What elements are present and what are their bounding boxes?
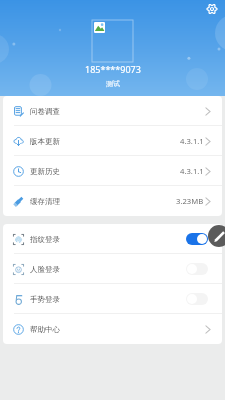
- staticText: 185****9073: [85, 63, 141, 75]
- staticText: 手势登录: [30, 295, 60, 304]
- staticText: 4.3.1.1: [180, 166, 204, 176]
- button[interactable]: 更新历史: [3, 156, 222, 186]
- button[interactable]: 版本更新: [3, 126, 222, 156]
- button[interactable]: Edit: [208, 225, 225, 247]
- button[interactable]: 帮助中心: [3, 314, 222, 344]
- staticText: 3.23MB: [176, 196, 204, 206]
- staticText: 版本更新: [30, 137, 60, 146]
- button[interactable]: 指纹登录: [3, 224, 222, 254]
- staticText: 测试: [106, 79, 120, 88]
- button[interactable]: 问卷调查: [3, 96, 222, 126]
- staticText: 指纹登录: [30, 235, 60, 244]
- button[interactable]: Settings: [203, 0, 220, 17]
- staticText: 4.3.1.1: [180, 136, 204, 146]
- staticText: 更新历史: [30, 167, 60, 176]
- staticText: 人脸登录: [30, 265, 60, 274]
- button[interactable]: 缓存清理: [3, 186, 222, 216]
- staticText: 问卷调查: [30, 107, 60, 116]
- button[interactable]: 手势登录: [3, 284, 222, 314]
- staticText: 缓存清理: [30, 197, 60, 206]
- button[interactable]: 人脸登录: [3, 254, 222, 284]
- staticText: 帮助中心: [30, 325, 60, 334]
